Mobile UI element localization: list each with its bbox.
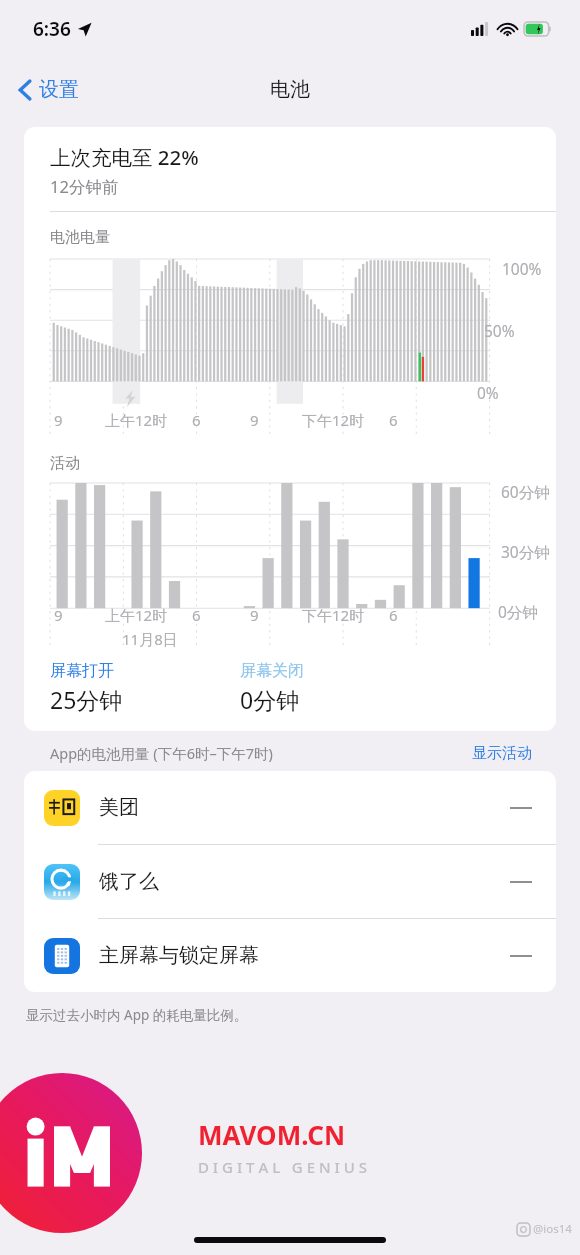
staticText: 9 [250, 410, 259, 430]
staticText: 6 [192, 605, 201, 625]
staticText: 9 [54, 410, 63, 430]
staticText: 活动 [50, 454, 80, 473]
staticText: D I G I T A L G E N I U S [198, 1157, 367, 1177]
staticText: MAVOM.CN [198, 1117, 346, 1152]
staticText: 60分钟 [501, 481, 550, 502]
staticText: 美团 [99, 795, 139, 820]
staticText: 主屏幕与锁定屏幕 [99, 943, 259, 968]
staticText: 显示过去小时内 App 的耗电量比例。 [26, 1006, 248, 1024]
staticText: 电池 [270, 77, 310, 102]
staticText: 30分钟 [501, 541, 550, 562]
staticText: 0% [477, 382, 499, 403]
staticText: @ios14 [533, 1221, 572, 1237]
staticText: 6 [192, 410, 201, 430]
staticText: 上午12时 [105, 410, 168, 430]
button[interactable]: 显示活动 [472, 744, 532, 763]
button[interactable]: 屏幕打开 [50, 661, 240, 715]
staticText: 屏幕打开 [50, 661, 114, 681]
staticText: 50% [484, 320, 515, 341]
staticText: 下午12时 [302, 605, 365, 625]
staticText: 9 [54, 605, 63, 625]
staticText: App的电池用量 (下午6时–下午7时) [50, 743, 273, 763]
staticText: 屏幕关闭 [240, 661, 304, 681]
staticText: 6 [389, 410, 398, 430]
staticText: 下午12时 [302, 410, 365, 430]
staticText: 6 [389, 605, 398, 625]
staticText: 0分钟 [498, 601, 538, 622]
button[interactable]: 美团 [24, 771, 556, 844]
staticText: 饿了么 [99, 869, 159, 894]
button[interactable]: 设置 [0, 71, 89, 108]
staticText: 上次充电至 22% [50, 143, 199, 171]
staticText: 100% [502, 258, 542, 279]
staticText: 0分钟 [240, 684, 300, 715]
staticText: 电池电量 [50, 228, 110, 247]
staticText: 上午12时 [105, 605, 168, 625]
staticText: 显示活动 [472, 744, 532, 763]
staticText: 6:36 [33, 16, 71, 42]
staticText: 11月8日 [122, 629, 178, 649]
button[interactable]: 屏幕关闭 [240, 661, 304, 715]
staticText: 9 [250, 605, 259, 625]
staticText: 25分钟 [50, 684, 123, 715]
staticText: 12分钟前 [50, 175, 119, 198]
button[interactable]: 主屏幕与锁定屏幕 [24, 918, 556, 992]
button[interactable]: 饿了么 [24, 844, 556, 918]
staticText: 设置 [39, 77, 79, 102]
